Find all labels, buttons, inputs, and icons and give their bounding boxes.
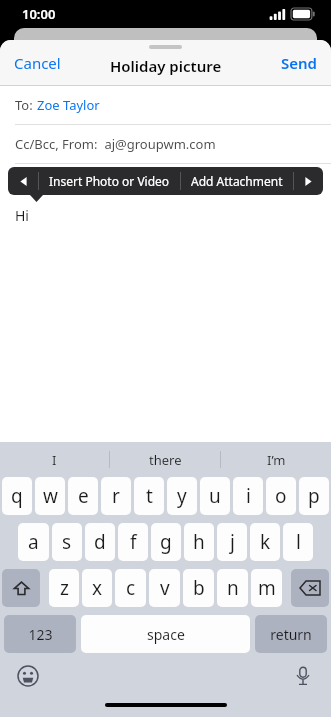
staticText: y bbox=[177, 483, 187, 509]
staticText: aj@groupwm.com bbox=[101, 135, 216, 153]
staticText: Send bbox=[281, 53, 317, 73]
staticText: v bbox=[160, 575, 170, 601]
staticText: n bbox=[227, 575, 239, 601]
button[interactable]: I bbox=[0, 442, 109, 477]
button[interactable]: t bbox=[134, 477, 164, 515]
button[interactable]: i bbox=[233, 477, 263, 515]
button[interactable]: Add Attachment bbox=[181, 167, 293, 195]
staticText: Insert Photo or Video bbox=[49, 173, 170, 189]
staticText: I’m bbox=[267, 451, 286, 469]
staticText: a bbox=[28, 529, 39, 555]
button[interactable]: Backspace bbox=[291, 569, 329, 607]
staticText: d bbox=[94, 529, 106, 555]
staticText: q bbox=[11, 483, 23, 509]
staticText: Add Attachment bbox=[191, 173, 283, 189]
button[interactable]: s bbox=[52, 523, 82, 561]
button[interactable]: j bbox=[217, 523, 247, 561]
button[interactable]: there bbox=[110, 442, 220, 477]
button[interactable]: e bbox=[68, 477, 98, 515]
button[interactable]: o bbox=[266, 477, 296, 515]
staticText: 123 bbox=[28, 625, 53, 644]
button[interactable]: Cc/Bcc, From: bbox=[0, 125, 331, 163]
staticText: g bbox=[160, 529, 172, 555]
button[interactable]: To: bbox=[0, 86, 331, 124]
staticText: j bbox=[230, 529, 235, 555]
button[interactable]: Dictate bbox=[288, 661, 318, 691]
staticText: f bbox=[130, 529, 137, 555]
button[interactable]: l bbox=[283, 523, 313, 561]
button[interactable]: d bbox=[85, 523, 115, 561]
button[interactable]: Emoji bbox=[13, 661, 43, 691]
staticText: u bbox=[209, 483, 221, 509]
button[interactable]: z bbox=[49, 569, 79, 607]
button[interactable]: y bbox=[167, 477, 197, 515]
button[interactable]: r bbox=[101, 477, 131, 515]
staticText: k bbox=[260, 529, 271, 555]
staticText: p bbox=[308, 483, 320, 509]
button[interactable]: w bbox=[35, 477, 65, 515]
staticText: there bbox=[149, 451, 182, 469]
staticText: Cc/Bcc, From: bbox=[15, 135, 101, 153]
staticText: s bbox=[62, 529, 72, 555]
button[interactable]: Insert Photo or Video bbox=[39, 167, 180, 195]
staticText: c bbox=[126, 575, 136, 601]
button[interactable]: Send bbox=[273, 47, 325, 79]
staticText: l bbox=[296, 529, 301, 555]
button[interactable]: a bbox=[18, 523, 49, 561]
button[interactable]: q bbox=[2, 477, 32, 515]
staticText: e bbox=[78, 483, 89, 509]
staticText: w bbox=[43, 483, 58, 509]
button[interactable]: Cancel bbox=[6, 47, 69, 79]
staticText: b bbox=[193, 575, 205, 601]
staticText: o bbox=[275, 483, 287, 509]
button[interactable]: h bbox=[184, 523, 214, 561]
staticText: Zoe Taylor bbox=[37, 96, 100, 114]
staticText: I bbox=[52, 451, 57, 469]
button[interactable]: f bbox=[118, 523, 148, 561]
staticText: To: bbox=[15, 96, 37, 114]
staticText: Cancel bbox=[14, 53, 61, 73]
button[interactable]: k bbox=[250, 523, 280, 561]
staticText: space bbox=[147, 625, 185, 644]
button[interactable]: Previous bbox=[8, 167, 38, 195]
button[interactable]: c bbox=[115, 569, 146, 607]
staticText: x bbox=[92, 575, 103, 601]
button[interactable]: p bbox=[299, 477, 329, 515]
button[interactable]: v bbox=[149, 569, 180, 607]
button[interactable]: Shift bbox=[2, 569, 40, 607]
staticText: return bbox=[270, 625, 312, 644]
button[interactable]: I’m bbox=[221, 442, 331, 477]
staticText: t bbox=[146, 483, 153, 509]
button[interactable]: space bbox=[81, 615, 250, 653]
staticText: z bbox=[60, 575, 69, 601]
button[interactable]: 123 bbox=[4, 615, 76, 653]
staticText: h bbox=[193, 529, 205, 555]
staticText: r bbox=[112, 483, 120, 509]
button[interactable]: b bbox=[183, 569, 214, 607]
button[interactable]: Next bbox=[294, 167, 323, 195]
button[interactable]: m bbox=[251, 569, 282, 607]
button[interactable]: return bbox=[255, 615, 327, 653]
staticText: Hi bbox=[15, 206, 29, 225]
staticText: 10:00 bbox=[22, 5, 56, 23]
button[interactable]: n bbox=[217, 569, 248, 607]
staticText: m bbox=[258, 575, 276, 601]
button[interactable]: u bbox=[200, 477, 230, 515]
staticText: i bbox=[246, 483, 251, 509]
button[interactable]: g bbox=[151, 523, 181, 561]
staticText: Holiday picture bbox=[110, 56, 222, 76]
button[interactable]: x bbox=[82, 569, 112, 607]
